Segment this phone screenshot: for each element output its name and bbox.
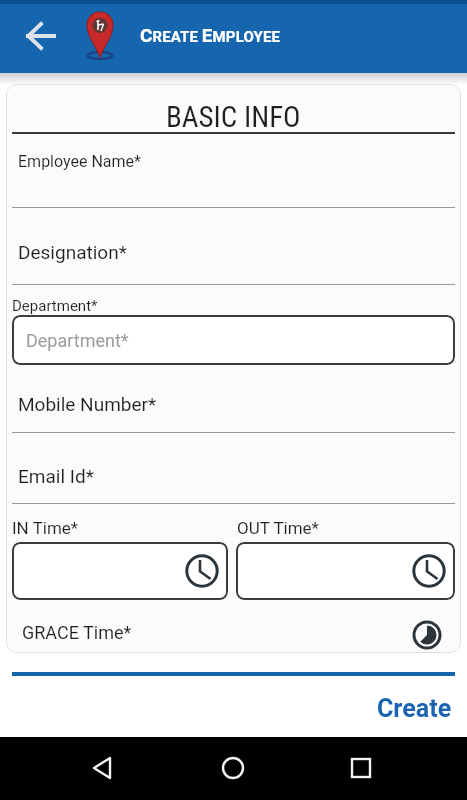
button[interactable]: [12, 384, 455, 434]
button[interactable]: [12, 234, 455, 286]
staticText: Department*: [26, 330, 129, 351]
button[interactable]: [337, 744, 385, 792]
staticText: Department*: [12, 297, 98, 315]
staticText: OUT Time*: [237, 518, 319, 538]
button[interactable]: [17, 12, 65, 60]
staticText: Email Id*: [18, 465, 94, 487]
button[interactable]: [79, 744, 127, 792]
button[interactable]: [236, 542, 455, 600]
button[interactable]: [12, 614, 455, 652]
button[interactable]: [12, 458, 455, 505]
staticText: Mobile Number*: [18, 393, 157, 415]
staticText: GRACE Time*: [22, 622, 132, 643]
staticText: Designation*: [18, 241, 127, 263]
staticText: Create: [377, 694, 452, 723]
button[interactable]: [209, 744, 257, 792]
staticText: Employee Name*: [18, 152, 141, 171]
staticText: IN Time*: [12, 518, 79, 538]
staticText: BASIC INFO: [166, 100, 301, 134]
staticText: CREATE EMPLOYEE: [140, 24, 280, 46]
button[interactable]: Department*: [12, 315, 455, 365]
button[interactable]: Create: [370, 690, 460, 726]
button[interactable]: [12, 542, 228, 600]
button[interactable]: [12, 142, 455, 208]
